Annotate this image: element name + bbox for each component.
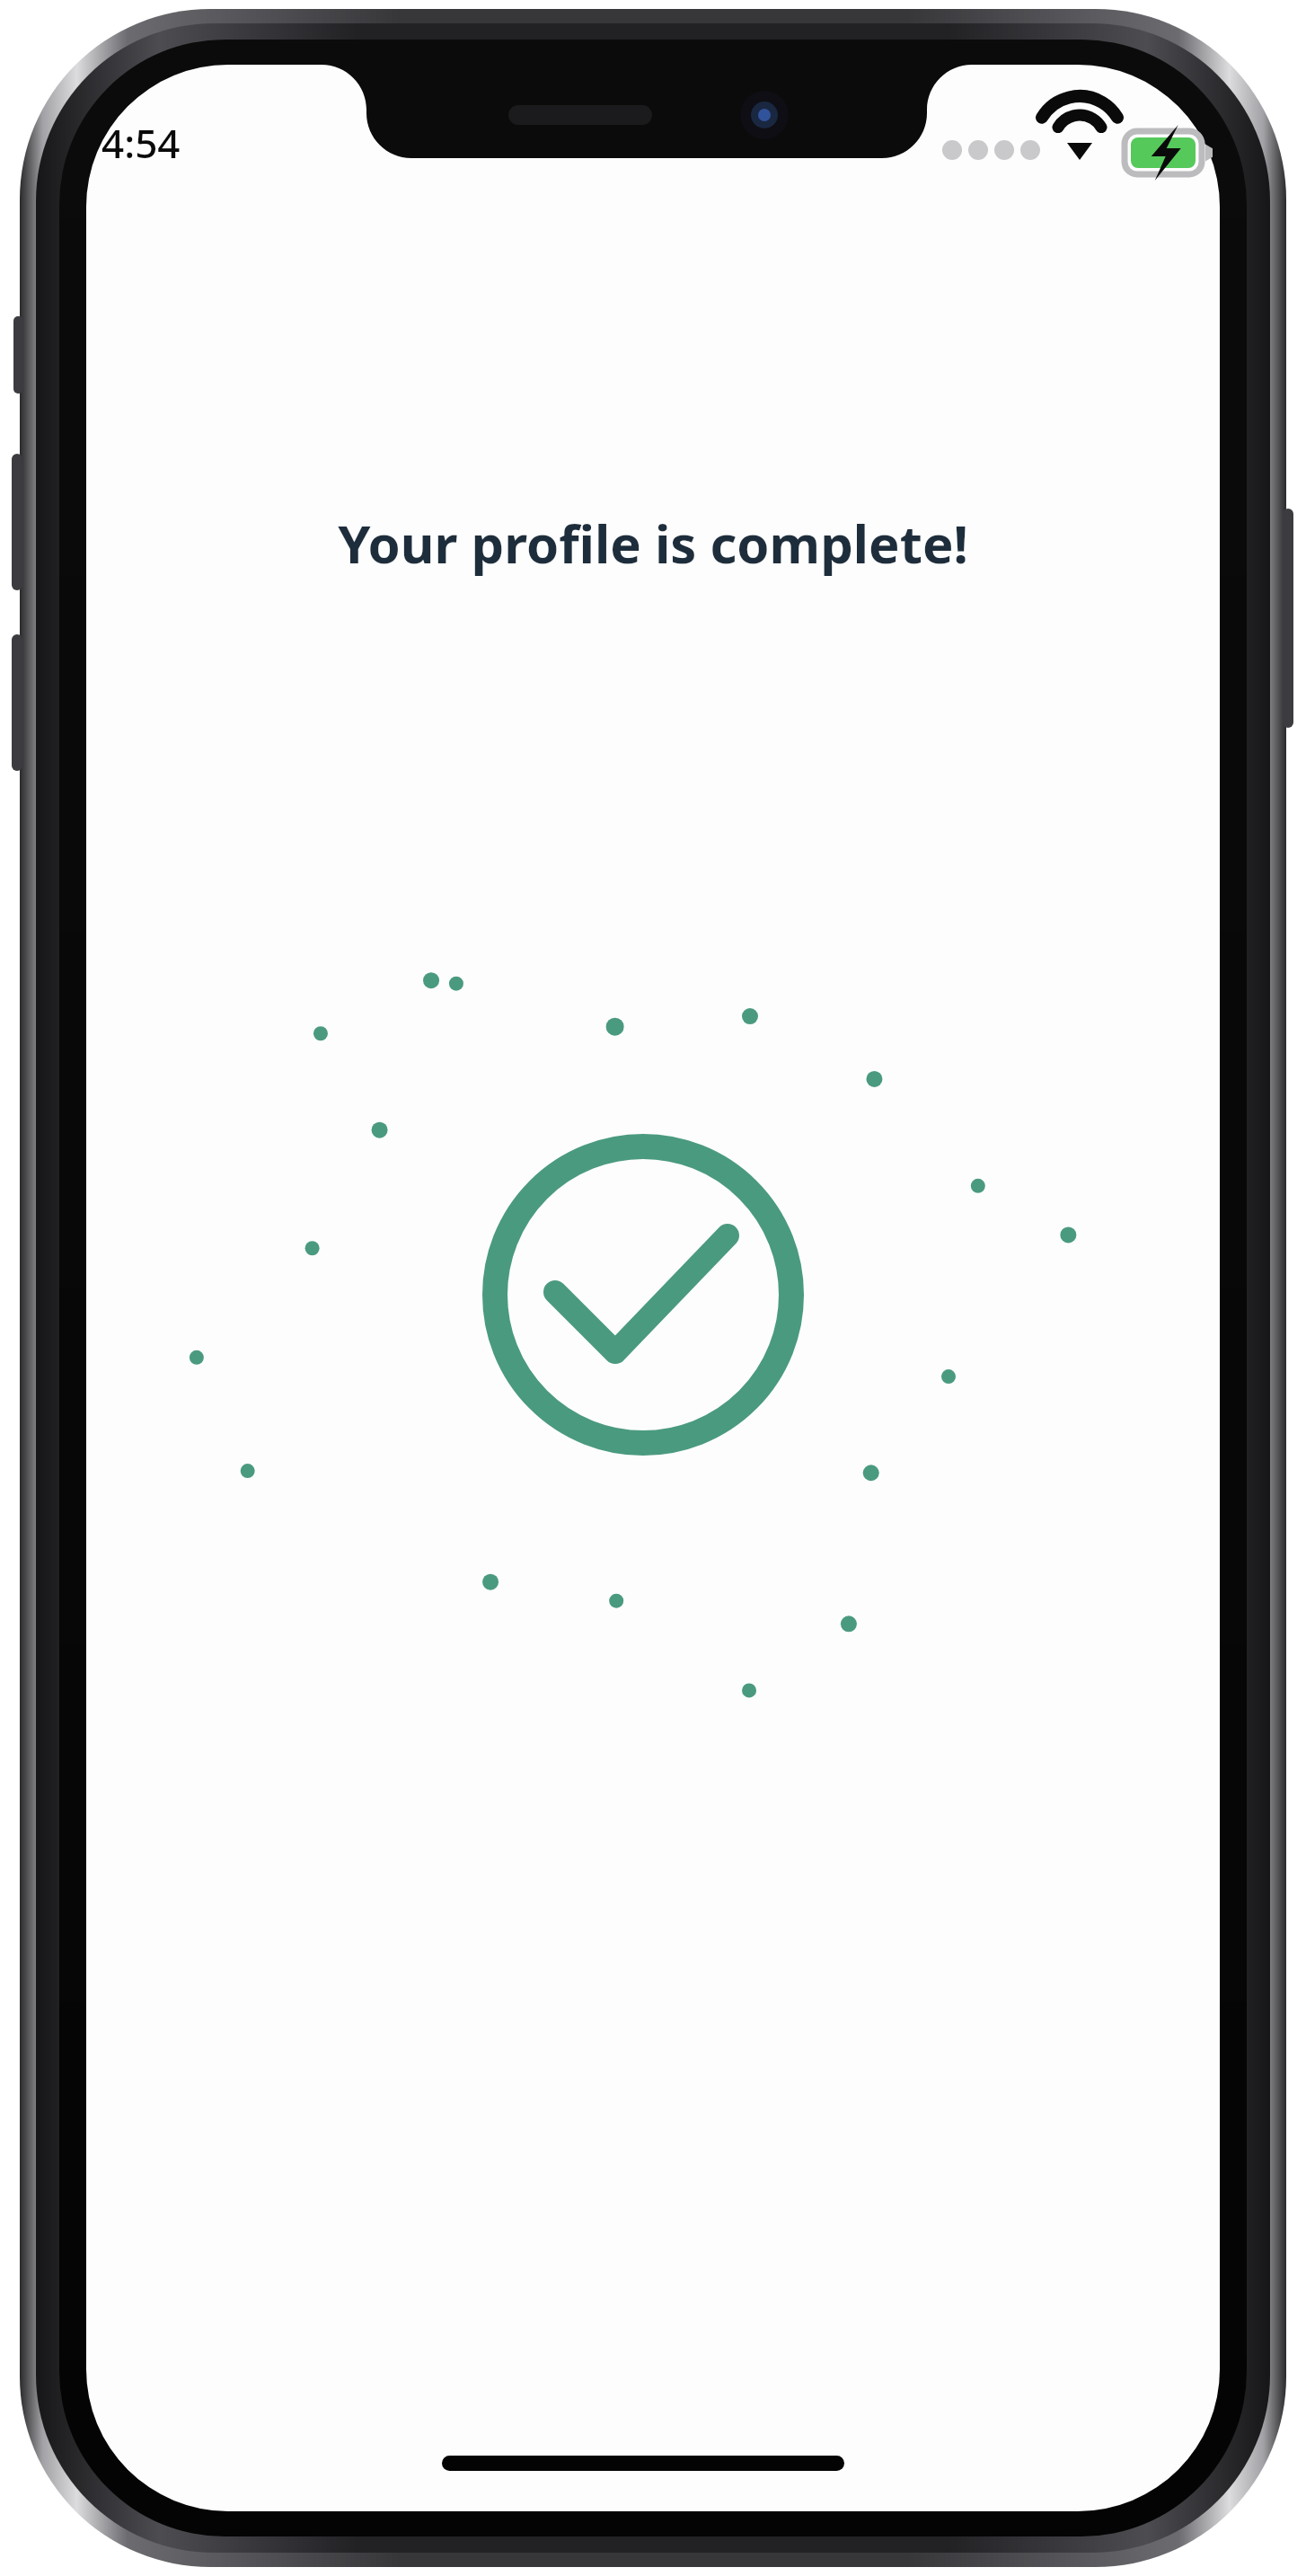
button[interactable]: Profile complete bbox=[481, 1133, 805, 1456]
button[interactable]: Your profile is complete! bbox=[0, 508, 1306, 579]
staticText: 4:54 bbox=[101, 116, 181, 170]
